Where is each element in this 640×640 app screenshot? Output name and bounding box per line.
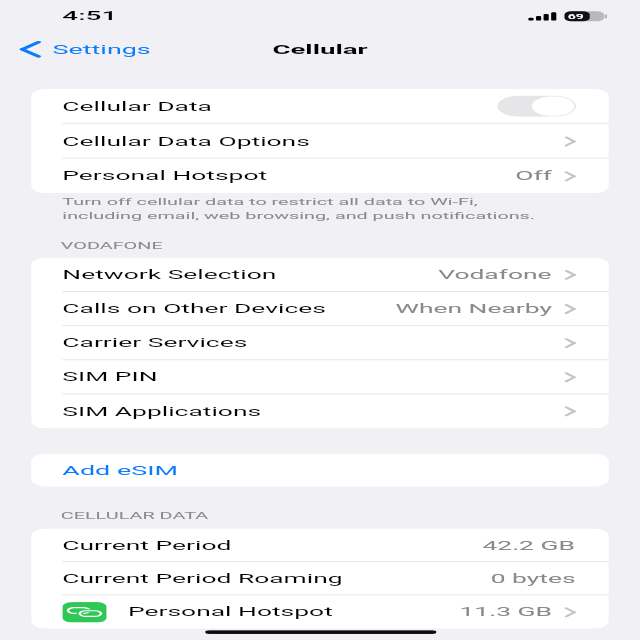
staticText: Current Period: [62, 538, 231, 553]
staticText: Turn off cellular data to restrict all d…: [62, 197, 614, 221]
button[interactable]: SIM PIN: [31, 360, 609, 394]
staticText: CELLULAR DATA: [61, 511, 640, 522]
button[interactable]: Personal Hotspot: [31, 158, 609, 193]
staticText: Personal Hotspot: [62, 169, 267, 183]
staticText: VODAFONE: [61, 241, 640, 252]
button[interactable]: Calls on Other Devices: [31, 292, 609, 326]
button[interactable]: Cellular Data: [497, 95, 576, 117]
staticText: Personal Hotspot: [128, 605, 333, 619]
staticText: Add eSIM: [62, 463, 179, 478]
staticText: Cellular Data: [62, 99, 213, 114]
staticText: Current Period Roaming: [62, 572, 343, 586]
staticText: 69: [568, 13, 584, 20]
staticText: 4:51: [62, 8, 118, 23]
button[interactable]: Network Selection: [31, 258, 609, 292]
staticText: Vodafone: [438, 268, 553, 282]
staticText: Carrier Services: [62, 336, 248, 350]
staticText: Settings: [52, 42, 151, 57]
button[interactable]: Cellular Data: [31, 89, 609, 124]
staticText: Calls on Other Devices: [62, 302, 327, 316]
staticText: SIM PIN: [62, 370, 158, 384]
staticText: 42.2 GB: [482, 538, 576, 553]
button[interactable]: Cellular Data Options: [31, 124, 609, 158]
button[interactable]: Carrier Services: [31, 326, 609, 360]
button[interactable]: Personal Hotspot: [31, 595, 609, 629]
staticText: SIM Applications: [62, 404, 263, 419]
staticText: Network Selection: [62, 268, 277, 282]
button[interactable]: Back: [20, 41, 151, 58]
button[interactable]: Current Period Roaming: [31, 562, 609, 595]
button[interactable]: Add eSIM: [31, 453, 609, 487]
staticText: Cellular Data Options: [62, 134, 310, 149]
other: Back: [20, 41, 41, 58]
staticText: Off: [515, 169, 553, 183]
staticText: 11.3 GB: [459, 605, 553, 619]
button[interactable]: SIM Applications: [31, 394, 609, 428]
button[interactable]: Current Period: [31, 528, 609, 562]
staticText: When Nearby: [395, 302, 553, 316]
other: Battery 69 percent: [564, 11, 607, 21]
staticText: Cellular: [272, 42, 368, 57]
staticText: 0 bytes: [491, 572, 576, 586]
